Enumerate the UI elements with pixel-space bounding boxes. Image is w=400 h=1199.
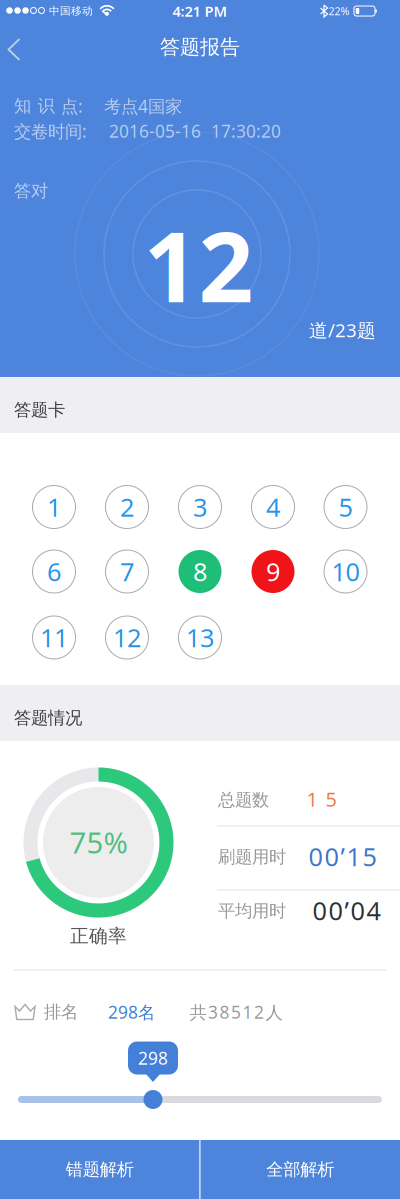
staticText: 00’04: [312, 894, 380, 927]
staticText: 3: [193, 490, 207, 524]
staticText: 2016-05-16 17:30:20: [109, 119, 281, 142]
staticText: 8: [193, 555, 207, 588]
staticText: 考点4国家: [104, 94, 182, 117]
staticText: 正确率: [70, 924, 127, 947]
staticText: 中国移动: [49, 4, 93, 17]
staticText: 总题数: [218, 789, 269, 811]
button[interactable]: Rank slider: [18, 1085, 382, 1113]
button[interactable]: 12: [105, 616, 148, 659]
staticText: 平均用时: [218, 900, 286, 922]
button[interactable]: 8: [178, 550, 221, 593]
staticText: 道/23题: [309, 318, 376, 342]
button[interactable]: 全部解析: [200, 1140, 400, 1199]
button[interactable]: 5: [324, 485, 367, 528]
staticText: 6: [47, 555, 61, 588]
button[interactable]: 2: [105, 485, 148, 528]
staticText: 全部解析: [266, 1159, 334, 1180]
button[interactable]: 13: [178, 616, 221, 659]
staticText: 5: [338, 490, 352, 524]
staticText: 10: [331, 555, 359, 588]
button[interactable]: 11: [32, 616, 75, 659]
staticText: 22%: [328, 4, 349, 18]
staticText: 12: [113, 621, 141, 654]
button[interactable]: Back: [2, 37, 28, 62]
staticText: 刷题用时: [218, 846, 286, 868]
staticText: 知: [14, 95, 31, 117]
button[interactable]: 10: [324, 550, 367, 593]
staticText: 298名: [108, 1000, 155, 1023]
staticText: 9: [266, 555, 280, 588]
staticText: 2: [120, 490, 134, 524]
button[interactable]: 4: [251, 485, 294, 528]
staticText: 4:21 PM: [172, 1, 227, 21]
staticText: 4: [266, 490, 280, 524]
button[interactable]: 1: [32, 485, 75, 528]
staticText: 7: [120, 555, 134, 588]
staticText: 11: [40, 621, 68, 654]
staticText: 15: [306, 786, 336, 812]
staticText: 识: [37, 95, 54, 117]
button[interactable]: 错题解析: [0, 1140, 199, 1199]
staticText: 00’15: [308, 840, 376, 873]
button[interactable]: 7: [105, 550, 148, 593]
staticText: 298: [138, 1046, 168, 1069]
staticText: 答题报告: [160, 35, 240, 59]
button[interactable]: 6: [32, 550, 75, 593]
staticText: 错题解析: [66, 1159, 134, 1180]
staticText: 排名: [44, 1001, 78, 1023]
button[interactable]: 9: [251, 550, 294, 593]
staticText: 答题情况: [14, 707, 82, 729]
staticText: 75%: [69, 822, 127, 861]
staticText: 12: [143, 201, 253, 329]
staticText: 1: [47, 490, 61, 524]
staticText: 答对: [14, 180, 48, 202]
staticText: 共38512人: [189, 1000, 282, 1023]
button[interactable]: 3: [178, 485, 221, 528]
staticText: 交卷时间:: [14, 119, 87, 142]
staticText: 答题卡: [14, 399, 65, 421]
staticText: 13: [186, 621, 214, 654]
staticText: 点:: [61, 94, 83, 117]
